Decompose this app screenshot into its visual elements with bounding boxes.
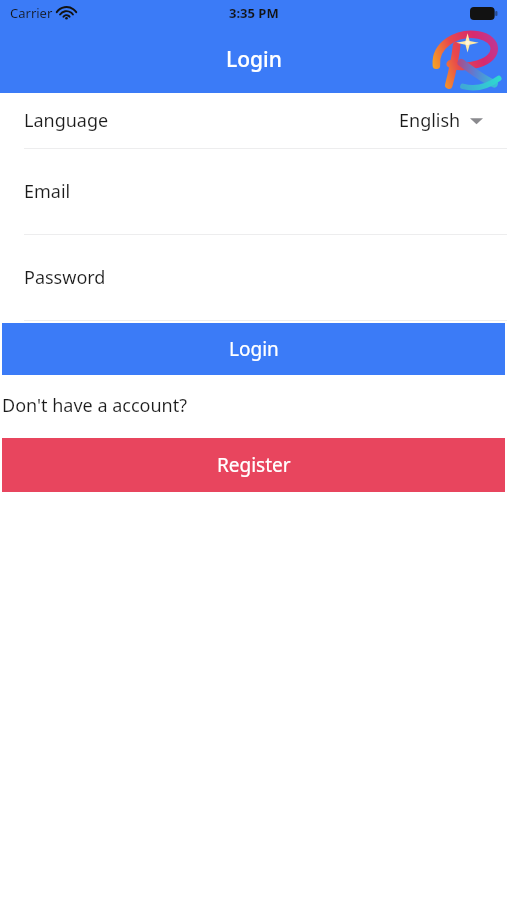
staticText: Login [226,45,282,74]
button[interactable]: Email [0,149,507,234]
button[interactable]: Login [2,323,505,375]
staticText: Email [24,179,71,204]
button[interactable]: Register [2,438,505,492]
other: App logo [427,27,505,93]
staticText: Language [24,108,109,133]
button[interactable]: Password [0,235,507,320]
staticText: Don't have a account? [2,393,188,418]
staticText: English [399,108,461,133]
staticText: 3:35 PM [229,4,279,22]
button[interactable]: Language [0,93,507,148]
staticText: Register [217,452,291,478]
staticText: Carrier [10,4,53,22]
staticText: Password [24,265,106,290]
staticText: Login [229,336,279,362]
